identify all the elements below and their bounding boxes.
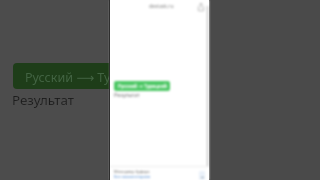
staticText: Результат [12,91,75,109]
staticText: Русский ⟶ Турецкий [25,69,123,86]
staticText: Менеджер буфера [114,169,150,174]
button[interactable]: Share [195,1,207,13]
staticText: Русский → Турецкий [118,83,167,90]
button[interactable]: Русский ⟶ Турецкий [13,63,123,89]
staticText: Без комментариев [114,174,151,179]
button[interactable]: Русский → Турецкий [114,81,170,91]
button[interactable]: More [199,171,205,180]
staticText: devtask.ru [149,3,174,10]
staticText: Результат [114,91,140,98]
